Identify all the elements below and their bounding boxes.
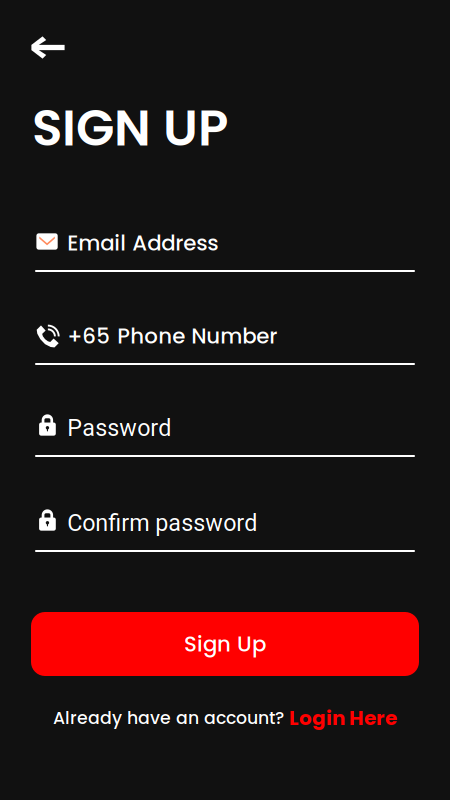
button[interactable]: Back [0, 0, 83, 93]
button[interactable]: Already have an account? [0, 704, 450, 732]
staticText: Phone Number [117, 321, 277, 351]
button[interactable]: Sign Up [31, 612, 419, 676]
staticText: +65 [67, 321, 110, 351]
staticText: Already have an account? [53, 706, 289, 730]
staticText: Confirm password [67, 509, 257, 537]
staticText: Email Address [67, 228, 218, 258]
staticText: Sign Up [184, 629, 266, 659]
staticText: Password [67, 414, 171, 442]
staticText: SIGN UP [32, 93, 228, 163]
staticText: Login Here [289, 704, 397, 732]
